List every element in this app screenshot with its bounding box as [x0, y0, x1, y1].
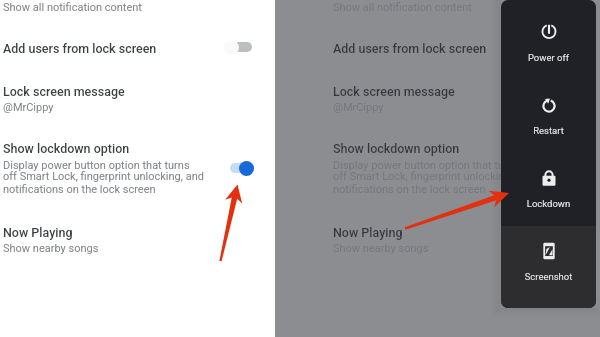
staticText: @MrCippy: [333, 101, 384, 114]
button[interactable]: Lockdown: [501, 154, 596, 227]
staticText: Now Playing: [3, 225, 73, 240]
button[interactable]: Show lockdown option, on: [224, 160, 254, 176]
staticText: Now Playing: [333, 225, 403, 240]
staticText: notifications on the lock screen: [333, 183, 486, 196]
button[interactable]: Screenshot: [501, 227, 596, 300]
staticText: Power off: [501, 52, 596, 63]
staticText: Screenshot: [501, 271, 596, 282]
staticText: Show nearby songs: [3, 242, 99, 255]
staticText: Show nearby songs: [333, 242, 429, 255]
staticText: Add users from lock screen: [3, 41, 157, 56]
button[interactable]: Add users from lock screen, off: [224, 39, 252, 55]
button[interactable]: Power off: [501, 8, 596, 81]
staticText: Lockdown: [501, 198, 596, 209]
staticText: Lock screen message: [333, 84, 455, 99]
staticText: Lock screen message: [3, 84, 125, 99]
staticText: Show all notification content: [3, 1, 142, 14]
staticText: Display power button option that turns: [3, 159, 190, 172]
button[interactable]: Restart: [501, 81, 596, 154]
staticText: Display power button option that turns: [333, 159, 520, 172]
staticText: Restart: [501, 125, 596, 136]
staticText: Show lockdown option: [3, 141, 130, 156]
staticText: off Smart Lock, fingerprint unlocking, a…: [3, 170, 204, 183]
staticText: notifications on the lock screen: [3, 183, 156, 196]
staticText: Show lockdown option: [333, 141, 460, 156]
staticText: Add users from lock screen: [333, 41, 487, 56]
staticText: Show all notification content: [333, 1, 472, 14]
staticText: off Smart Lock, fingerprint unlocking, a…: [333, 170, 534, 183]
staticText: @MrCippy: [3, 101, 54, 114]
